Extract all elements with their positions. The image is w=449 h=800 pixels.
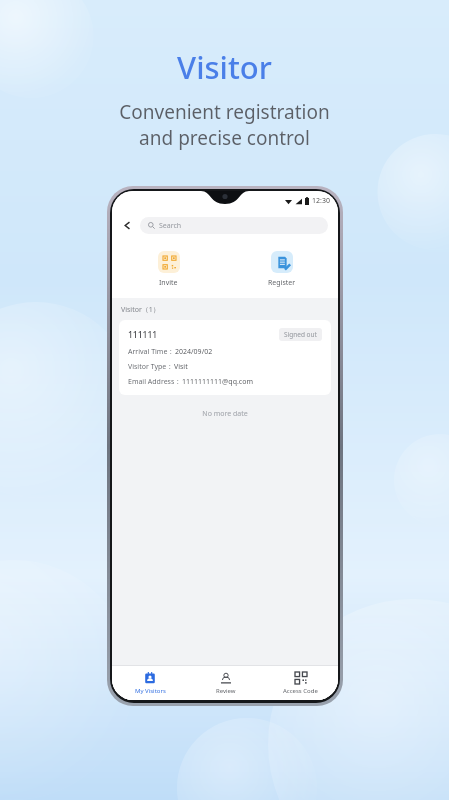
button[interactable]: Review: [188, 666, 263, 700]
staticText: Invite: [159, 278, 178, 288]
staticText: Search: [159, 221, 182, 231]
staticText: My Visitors: [135, 687, 166, 695]
button[interactable]: Access Code: [263, 666, 338, 700]
staticText: No more date: [112, 409, 338, 419]
staticText: Visitor: [177, 46, 272, 88]
staticText: Signed out: [284, 330, 317, 339]
button[interactable]: 111111: [119, 320, 331, 395]
button[interactable]: My Visitors: [112, 666, 188, 700]
staticText: Email Address：: [128, 377, 182, 387]
staticText: Register: [268, 278, 296, 288]
staticText: 111111: [128, 329, 158, 341]
staticText: Access Code: [283, 687, 318, 695]
staticText: Arrival Time：: [128, 347, 175, 357]
staticText: Visitor（1）: [121, 305, 160, 315]
staticText: 12:30: [312, 196, 330, 206]
staticText: Visitor Type：: [128, 362, 174, 372]
staticText: Convenient registration and precise cont…: [119, 99, 330, 151]
button[interactable]: Search: [140, 217, 328, 234]
staticText: 2024/09/02: [175, 347, 213, 357]
button[interactable]: Register: [225, 240, 338, 298]
staticText: 1111111111@qq.com: [182, 377, 253, 387]
staticText: Visit: [174, 362, 188, 372]
button[interactable]: Invite: [112, 240, 225, 298]
button[interactable]: Back: [118, 216, 136, 234]
staticText: Review: [216, 687, 236, 695]
